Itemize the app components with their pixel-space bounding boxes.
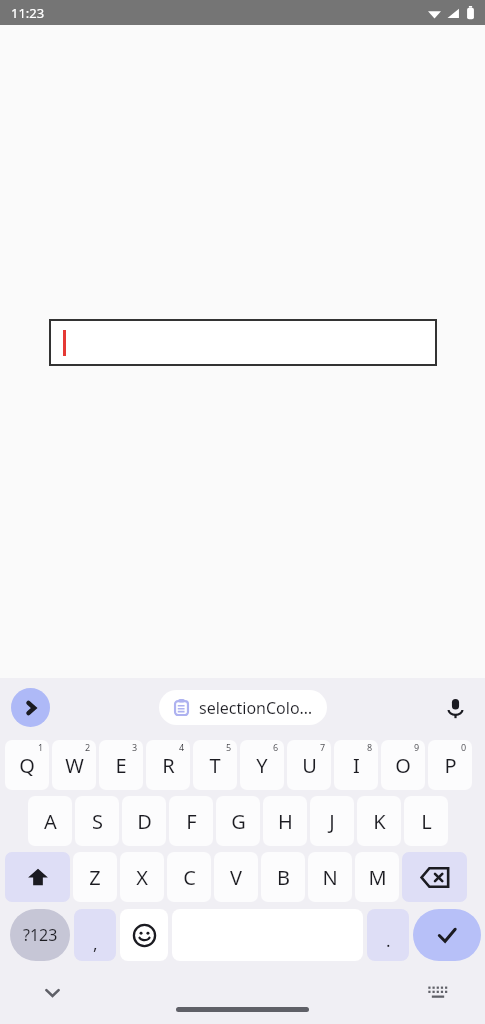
staticText: V (230, 864, 242, 891)
staticText: L (421, 808, 432, 835)
staticText: M (368, 864, 387, 891)
button[interactable]: Q (5, 740, 49, 790)
staticText: D (137, 808, 152, 835)
staticText: 4 (179, 741, 185, 753)
staticText: K (373, 808, 386, 835)
button[interactable]: A (28, 796, 72, 846)
staticText: E (115, 752, 127, 779)
staticText: G (231, 808, 246, 835)
button[interactable]: Voice input (438, 691, 472, 725)
button[interactable]: R (146, 740, 190, 790)
staticText: O (395, 752, 411, 779)
button[interactable]: X (120, 852, 164, 902)
button[interactable]: Y (240, 740, 284, 790)
button[interactable]: Emoji (120, 909, 168, 961)
staticText: 3 (132, 741, 138, 753)
button[interactable]: , (74, 909, 116, 961)
staticText: Z (89, 864, 101, 891)
button[interactable]: Hide keyboard (33, 973, 71, 1011)
staticText: X (136, 864, 148, 891)
staticText: 2 (85, 741, 91, 753)
staticText: H (278, 808, 293, 835)
staticText: ?123 (23, 924, 58, 946)
button[interactable] (49, 319, 437, 366)
staticText: 11:23 (11, 4, 45, 22)
staticText: B (277, 864, 290, 891)
staticText: W (65, 752, 84, 779)
staticText: Y (256, 752, 268, 779)
button[interactable]: W (52, 740, 96, 790)
staticText: T (209, 752, 221, 779)
button[interactable]: Z (73, 852, 117, 902)
button[interactable]: B (261, 852, 305, 902)
button[interactable]: K (357, 796, 401, 846)
staticText: C (183, 864, 196, 891)
button[interactable]: L (404, 796, 448, 846)
staticText: I (353, 752, 360, 779)
button[interactable]: Expand suggestions (11, 688, 50, 727)
staticText: F (186, 808, 197, 835)
staticText: 1 (38, 741, 44, 753)
staticText: . (386, 929, 391, 952)
button[interactable]: S (75, 796, 119, 846)
button[interactable]: C (167, 852, 211, 902)
staticText: N (322, 864, 338, 891)
staticText: R (162, 752, 175, 779)
staticText: S (92, 808, 103, 835)
staticText: , (93, 932, 98, 955)
staticText: selectionColo… (199, 697, 313, 719)
button[interactable]: I (334, 740, 378, 790)
button[interactable]: H (263, 796, 307, 846)
button[interactable]: D (122, 796, 166, 846)
button[interactable]: Backspace (402, 852, 467, 902)
button[interactable]: M (355, 852, 399, 902)
button[interactable]: U (287, 740, 331, 790)
button[interactable]: Enter (413, 909, 481, 961)
staticText: 9 (414, 741, 420, 753)
staticText: P (444, 752, 457, 779)
staticText: 7 (320, 741, 326, 753)
button[interactable]: Switch keyboard (419, 973, 457, 1011)
button[interactable]: Shift (5, 852, 70, 902)
staticText: 8 (367, 741, 373, 753)
button[interactable]: . (367, 909, 409, 961)
button[interactable]: G (216, 796, 260, 846)
staticText: J (329, 808, 335, 835)
button[interactable]: N (308, 852, 352, 902)
staticText: 0 (461, 741, 467, 753)
button[interactable]: O (381, 740, 425, 790)
staticText: Q (19, 752, 35, 779)
staticText: A (44, 808, 57, 835)
button[interactable]: F (169, 796, 213, 846)
staticText: 5 (226, 741, 232, 753)
button[interactable]: selectionColo… (159, 690, 327, 725)
button[interactable]: E (99, 740, 143, 790)
button[interactable]: P (428, 740, 472, 790)
button[interactable]: V (214, 852, 258, 902)
staticText: 6 (273, 741, 279, 753)
button[interactable]: J (310, 796, 354, 846)
button[interactable]: T (193, 740, 237, 790)
button[interactable]: ?123 (10, 909, 70, 961)
staticText: U (302, 752, 317, 779)
